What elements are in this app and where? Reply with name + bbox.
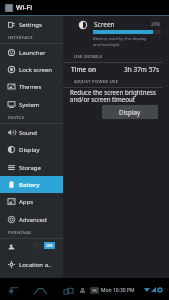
button[interactable]: Battery [0,176,63,193]
button[interactable]: Display [102,105,158,119]
staticText: Time on [71,65,97,74]
staticText: Wi-Fi [16,3,33,13]
staticText: Battery [19,181,40,189]
button[interactable]: Launcher [0,44,63,61]
button[interactable]: Sound [0,124,63,141]
staticText: INTERFACE [8,35,33,41]
staticText: 3h 37m 57s [124,65,160,74]
button[interactable]: Accounts [0,239,63,256]
staticText: System [19,101,40,109]
staticText: Mon 10:30 PM [101,287,135,294]
button[interactable]: Wi-Fi [0,0,63,15]
staticText: DEVICE [8,115,25,121]
staticText: PERSONAL [8,230,32,236]
button[interactable]: Settings [0,16,63,33]
button[interactable]: Advanced [0,211,63,228]
staticText: USE DETAILS [74,54,103,60]
button[interactable]: Display [0,141,63,158]
button[interactable]: Location a.. [0,256,63,273]
button[interactable]: Themes [0,78,63,95]
staticText: Advanced [19,216,47,224]
staticText: Display [119,108,141,116]
staticText: Display [19,146,40,154]
staticText: Sound [19,129,38,137]
button[interactable]: Toggle [33,242,55,249]
button[interactable]: Lock screen [0,61,63,78]
staticText: Storage [19,164,41,172]
staticText: Settings [19,21,42,29]
staticText: 26% [151,21,160,27]
staticText: Screen [94,20,115,29]
staticText: ADJUST POWER USE [74,79,119,85]
button[interactable]: System [0,96,63,113]
button[interactable]: Recent apps [60,283,76,299]
staticText: Location a.. [19,261,52,269]
button[interactable]: Storage [0,159,63,176]
staticText: Themes [19,83,42,91]
staticText: Apps [19,198,34,206]
staticText: ON [46,243,53,248]
staticText: Reduce the screen brightness and/or scre… [70,88,157,104]
staticText: Launcher [19,49,46,57]
staticText: Lock screen [19,66,53,74]
staticText: Battery used by the display and backligh… [93,36,147,47]
button[interactable]: Time on [71,63,160,76]
button[interactable]: Back [4,283,20,299]
button[interactable]: Home [31,283,47,299]
button[interactable]: Apps [0,193,63,210]
